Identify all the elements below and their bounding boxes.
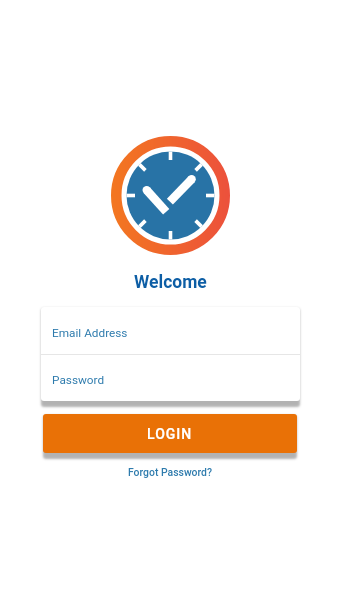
button[interactable]: Email Address — [41, 307, 300, 354]
button[interactable]: Forgot Password? — [122, 463, 219, 481]
button[interactable]: Password — [41, 354, 300, 401]
staticText: LOGIN — [147, 426, 193, 442]
staticText: Password — [52, 373, 105, 387]
staticText: Email Address — [52, 326, 128, 340]
other: Clock logo — [111, 136, 230, 255]
button[interactable]: LOGIN — [43, 414, 297, 453]
staticText: Welcome — [134, 272, 207, 293]
staticText: Forgot Password? — [128, 466, 213, 478]
